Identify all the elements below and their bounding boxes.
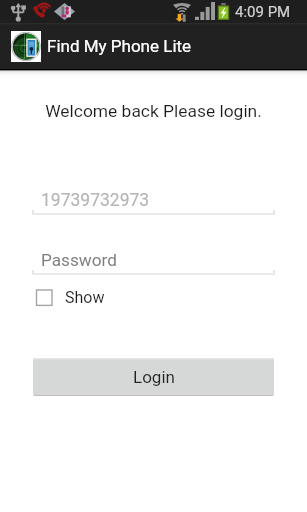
staticText: 19739732973: [41, 190, 150, 211]
staticText: 4:09 PM: [235, 3, 291, 21]
staticText: Show: [65, 288, 105, 307]
staticText: Find My Phone Lite: [47, 36, 192, 56]
button[interactable]: Login: [33, 358, 274, 396]
staticText: Login: [133, 367, 175, 387]
button[interactable]: Show: [36, 287, 105, 307]
staticText: Welcome back Please login.: [0, 101, 307, 121]
staticText: Password: [41, 250, 117, 270]
